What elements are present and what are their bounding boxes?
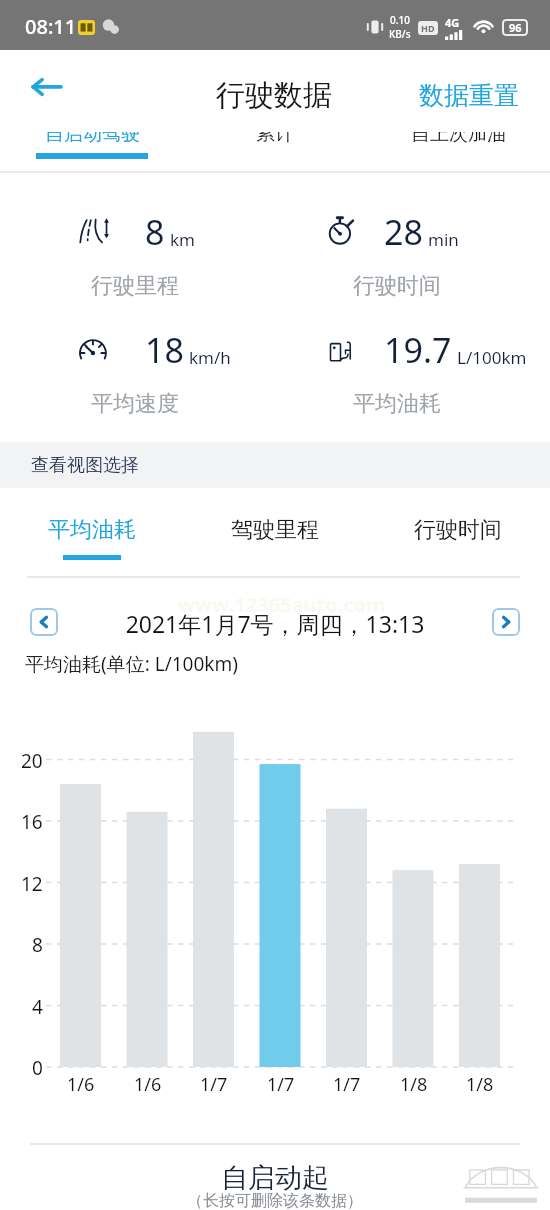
staticText: 查看视图选择 bbox=[31, 454, 139, 477]
button[interactable]: 行驶时间 bbox=[396, 510, 520, 550]
staticText: 08:11 bbox=[25, 13, 77, 40]
staticText: km/h bbox=[189, 346, 231, 369]
button[interactable]: Previous bbox=[30, 608, 58, 636]
button[interactable]: 平均油耗 bbox=[30, 510, 154, 550]
staticText: 1/7 bbox=[333, 1072, 361, 1097]
staticText: HD bbox=[421, 22, 435, 34]
staticText: 8 bbox=[32, 932, 43, 958]
staticText: 4 bbox=[32, 994, 43, 1020]
staticText: 驾驶里程 bbox=[231, 516, 319, 544]
staticText: min bbox=[428, 228, 459, 251]
staticText: 96 bbox=[509, 20, 522, 35]
staticText: 28 bbox=[384, 209, 423, 255]
staticText: 平均油耗 bbox=[353, 390, 441, 418]
staticText: 8 bbox=[145, 209, 165, 255]
staticText: 2021年1月7号，周四，13:13 bbox=[70, 608, 480, 639]
staticText: （长按可删除该条数据） bbox=[0, 1191, 550, 1210]
button[interactable]: 自启动驾驶 bbox=[45, 120, 140, 148]
button[interactable]: 驾驶里程 bbox=[213, 510, 337, 550]
staticText: 自上次加油 bbox=[411, 122, 506, 146]
staticText: www.12365auto.com bbox=[178, 591, 386, 618]
staticText: 累计 bbox=[256, 122, 294, 146]
staticText: 数据重置 bbox=[419, 80, 519, 111]
staticText: 1/7 bbox=[267, 1072, 295, 1097]
staticText: 12 bbox=[21, 871, 43, 897]
staticText: 自启动驾驶 bbox=[45, 122, 140, 146]
staticText: 1/6 bbox=[67, 1072, 95, 1097]
staticText: KB/s bbox=[389, 27, 411, 41]
staticText: 1/8 bbox=[466, 1072, 494, 1097]
staticText: 1/7 bbox=[200, 1072, 228, 1097]
staticText: 行驶里程 bbox=[91, 272, 179, 300]
staticText: 4G bbox=[445, 15, 460, 30]
button[interactable]: 数据重置 bbox=[405, 72, 533, 119]
staticText: 行驶时间 bbox=[353, 272, 441, 300]
staticText: 平均油耗 bbox=[48, 516, 136, 544]
staticText: 行驶数据 bbox=[216, 77, 332, 114]
staticText: 行驶时间 bbox=[414, 516, 502, 544]
staticText: 0 bbox=[32, 1055, 43, 1081]
button[interactable]: Back bbox=[20, 66, 72, 106]
staticText: km bbox=[170, 228, 195, 251]
staticText: 平均速度 bbox=[91, 390, 179, 418]
staticText: 20 bbox=[21, 748, 43, 774]
staticText: 16 bbox=[21, 809, 43, 835]
staticText: 1/8 bbox=[400, 1072, 428, 1097]
button[interactable]: Next bbox=[492, 608, 520, 636]
staticText: 自启动起 bbox=[0, 1161, 550, 1195]
button[interactable]: 累计 bbox=[256, 120, 294, 148]
staticText: 19.7 bbox=[384, 327, 452, 373]
staticText: 1/6 bbox=[134, 1072, 162, 1097]
staticText: L/100km bbox=[457, 346, 527, 369]
staticText: 0.10 bbox=[390, 13, 410, 27]
staticText: 18 bbox=[145, 327, 184, 373]
staticText: 平均油耗(单位: L/100km) bbox=[25, 651, 238, 677]
button[interactable]: 自上次加油 bbox=[411, 120, 506, 148]
